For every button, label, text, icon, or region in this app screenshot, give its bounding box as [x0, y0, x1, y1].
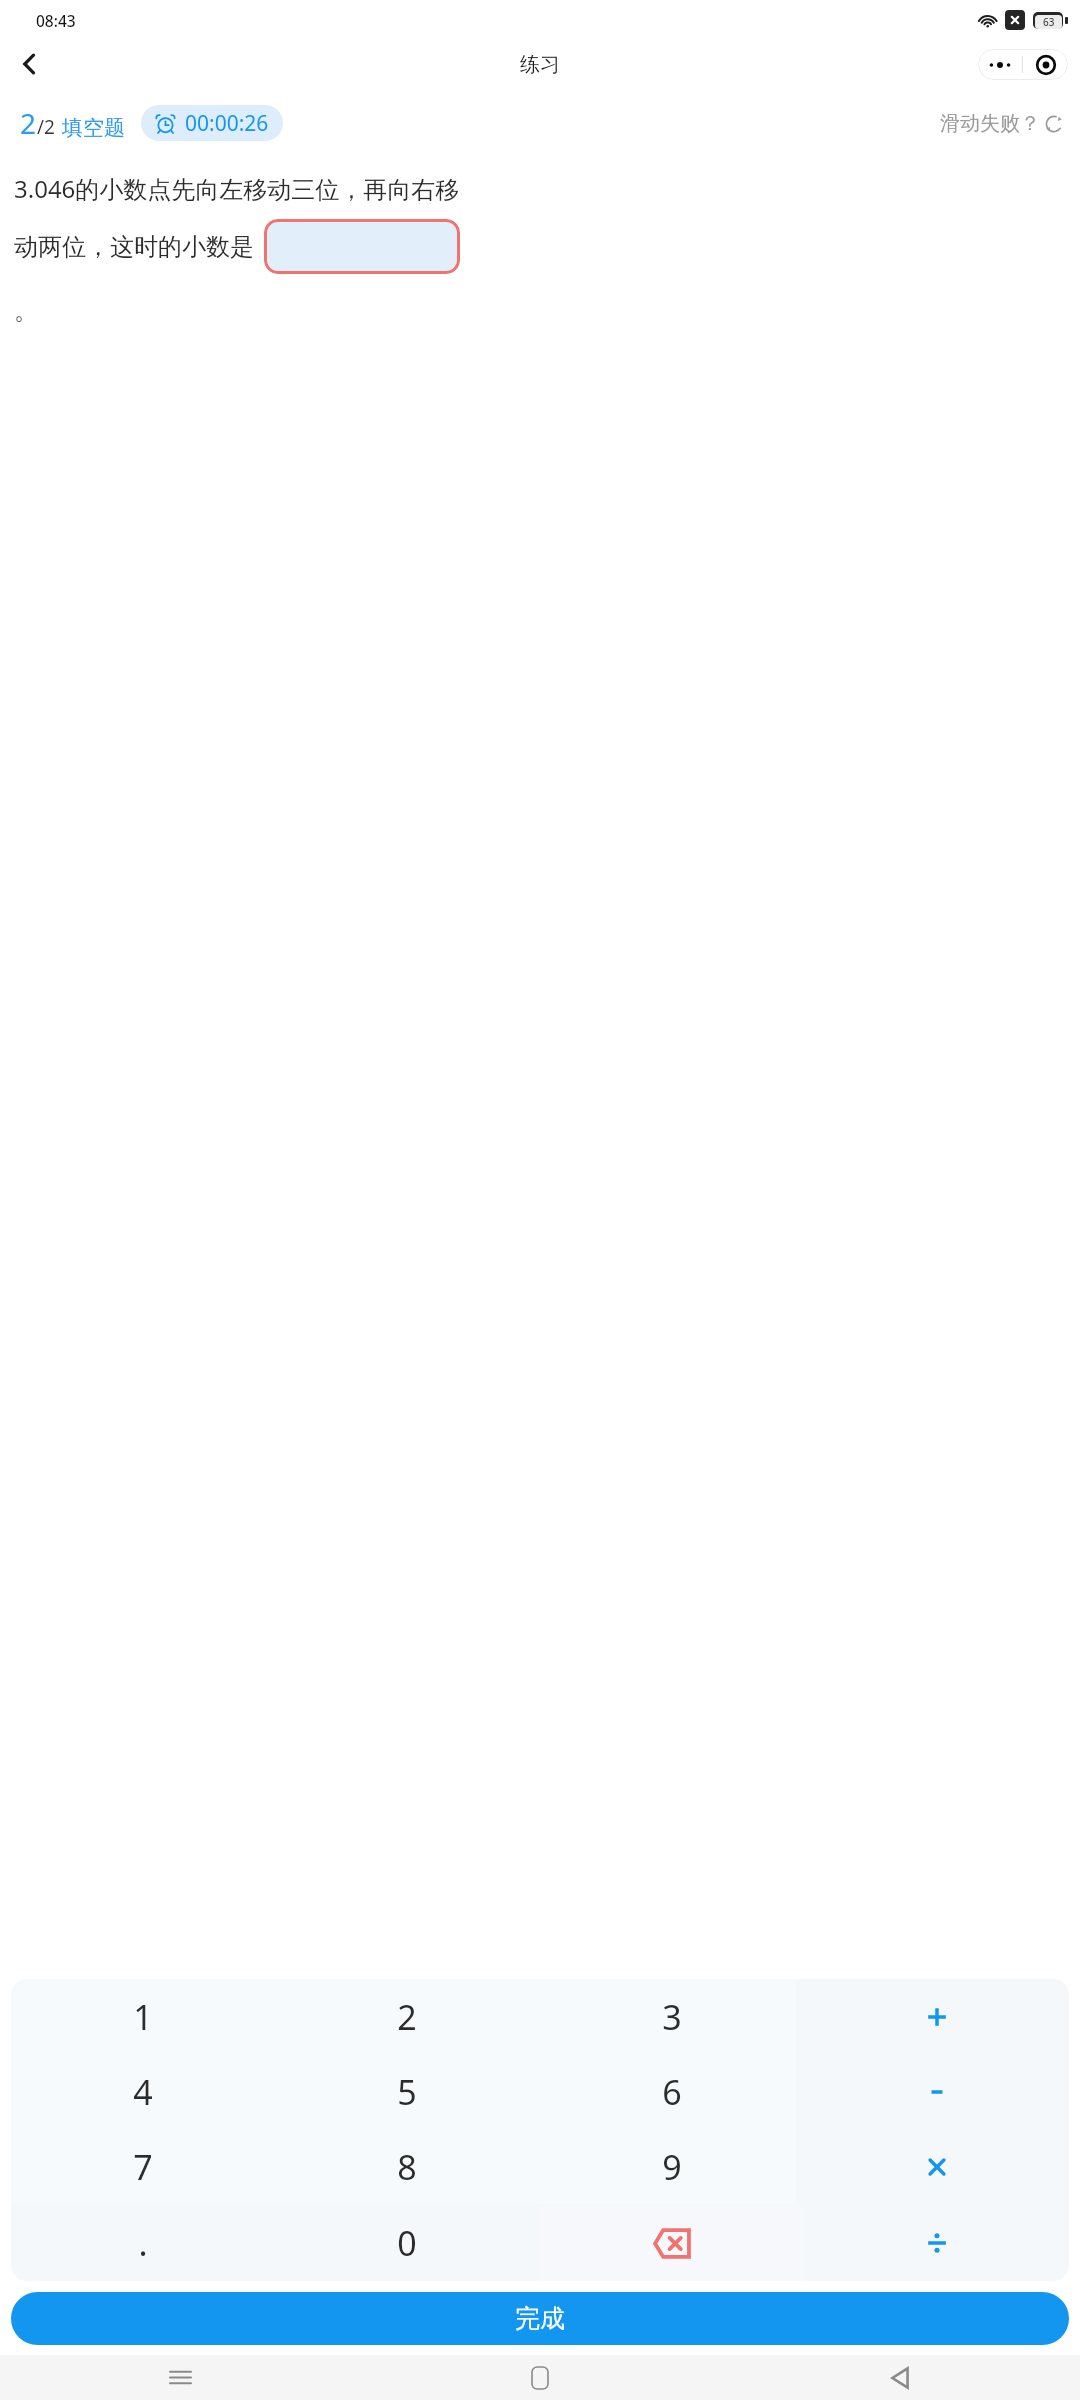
button[interactable]: 4 — [11, 2054, 275, 2129]
button[interactable]: Recents — [0, 2355, 360, 2400]
staticText: 9 — [662, 2144, 682, 2190]
staticText: 7 — [133, 2144, 153, 2190]
staticText: 练习 — [520, 52, 560, 77]
button[interactable]: 9 — [539, 2129, 804, 2205]
button[interactable] — [804, 1979, 1069, 2054]
staticText: 5 — [397, 2069, 417, 2115]
button[interactable]: Answer input — [264, 219, 460, 274]
button[interactable]: 3 — [539, 1979, 804, 2054]
button[interactable]: 00:00:26 — [141, 105, 283, 141]
staticText: 4 — [133, 2069, 153, 2115]
staticText: 填空题 — [62, 115, 125, 141]
staticText: 63 — [1043, 15, 1055, 29]
staticText: 2 — [20, 104, 37, 142]
staticText: 0 — [397, 2220, 417, 2266]
staticText: 滑动失败？ — [940, 111, 1040, 136]
staticText: 完成 — [515, 2303, 565, 2334]
button[interactable]: 6 — [539, 2054, 804, 2129]
button[interactable]: Close — [1023, 49, 1068, 80]
button[interactable]: 7 — [11, 2129, 275, 2205]
staticText: 8 — [397, 2144, 417, 2190]
staticText: 6 — [662, 2069, 682, 2115]
staticText: 2 — [397, 1994, 417, 2040]
staticText: 3.046的小数点先向左移动三位，再向右移 — [14, 172, 460, 205]
button[interactable]: Home — [360, 2355, 720, 2400]
staticText: 动两位，这时的小数是 — [14, 232, 254, 262]
button[interactable]: 滑动失败？ — [940, 105, 1064, 142]
button[interactable]: More — [978, 49, 1022, 80]
button[interactable]: Back — [720, 2355, 1080, 2400]
staticText: . — [138, 2220, 148, 2266]
button[interactable]: 2 — [275, 1979, 539, 2054]
button[interactable]: . — [11, 2205, 275, 2281]
button[interactable] — [804, 2129, 1069, 2205]
button[interactable]: 1 — [11, 1979, 275, 2054]
button[interactable]: 8 — [275, 2129, 539, 2205]
staticText: 00:00:26 — [185, 109, 269, 138]
button[interactable]: Delete — [539, 2205, 804, 2281]
staticText: /2 — [37, 114, 55, 140]
button[interactable] — [804, 2205, 1069, 2281]
button[interactable]: 5 — [275, 2054, 539, 2129]
staticText: 。 — [14, 296, 38, 326]
button[interactable]: Back — [6, 40, 54, 88]
staticText: 08:43 — [36, 10, 76, 31]
staticText: 1 — [133, 1994, 153, 2040]
button[interactable] — [804, 2054, 1069, 2129]
button[interactable]: 0 — [275, 2205, 539, 2281]
button[interactable]: 完成 — [11, 2292, 1069, 2345]
staticText: 3 — [662, 1994, 682, 2040]
